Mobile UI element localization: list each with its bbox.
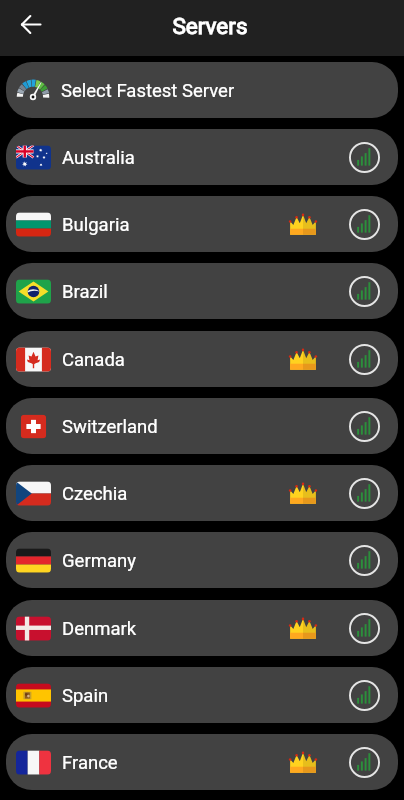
staticText: Czechia	[62, 483, 128, 505]
staticText: Denmark	[62, 618, 137, 640]
button[interactable]: Brazil	[6, 263, 398, 319]
staticText: Servers	[172, 13, 248, 39]
staticText: Spain	[62, 685, 109, 707]
button[interactable]: Back	[9, 2, 54, 47]
button[interactable]: Denmark	[6, 600, 398, 656]
staticText: Bulgaria	[62, 214, 130, 236]
staticText: France	[62, 752, 118, 774]
button[interactable]: Germany	[6, 532, 398, 588]
staticText: Switzerland	[62, 416, 158, 438]
button[interactable]: France	[6, 734, 398, 790]
button[interactable]: Bulgaria	[6, 196, 398, 252]
staticText: Germany	[62, 550, 136, 572]
button[interactable]: Australia	[6, 129, 398, 185]
staticText: Brazil	[62, 281, 108, 303]
button[interactable]: Switzerland	[6, 398, 398, 454]
button[interactable]: Canada	[6, 331, 398, 387]
staticText: Australia	[62, 147, 135, 169]
staticText: Canada	[62, 349, 125, 371]
button[interactable]: Select Fastest Server	[6, 62, 398, 118]
staticText: Select Fastest Server	[61, 80, 235, 102]
button[interactable]: Spain	[6, 667, 398, 723]
button[interactable]: Czechia	[6, 465, 398, 521]
